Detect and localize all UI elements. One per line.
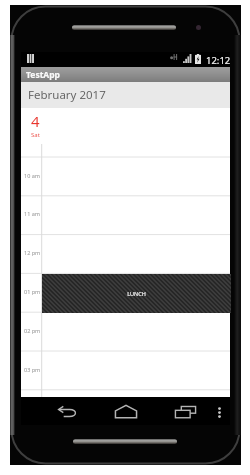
staticText: 02 pm: [24, 327, 41, 334]
staticText: 01 pm: [24, 288, 41, 295]
button[interactable]: February 2017: [21, 82, 230, 108]
staticText: 12 pm: [24, 249, 41, 256]
staticText: 11 am: [24, 210, 40, 217]
button[interactable]: LUNCH: [42, 274, 231, 313]
staticText: 12:12: [206, 54, 231, 67]
staticText: LUNCH: [127, 290, 146, 297]
staticText: February 2017: [28, 87, 106, 103]
staticText: 10 am: [24, 172, 40, 179]
staticText: TestApp: [26, 69, 60, 81]
button[interactable]: Recent apps: [171, 398, 199, 424]
button[interactable]: More options: [209, 398, 230, 424]
button[interactable]: Home: [113, 398, 141, 424]
staticText: Sat: [31, 131, 40, 139]
staticText: 03 pm: [24, 366, 41, 373]
button[interactable]: TestApp: [21, 67, 230, 82]
button[interactable]: Back: [53, 398, 81, 424]
staticText: 4: [31, 111, 40, 131]
